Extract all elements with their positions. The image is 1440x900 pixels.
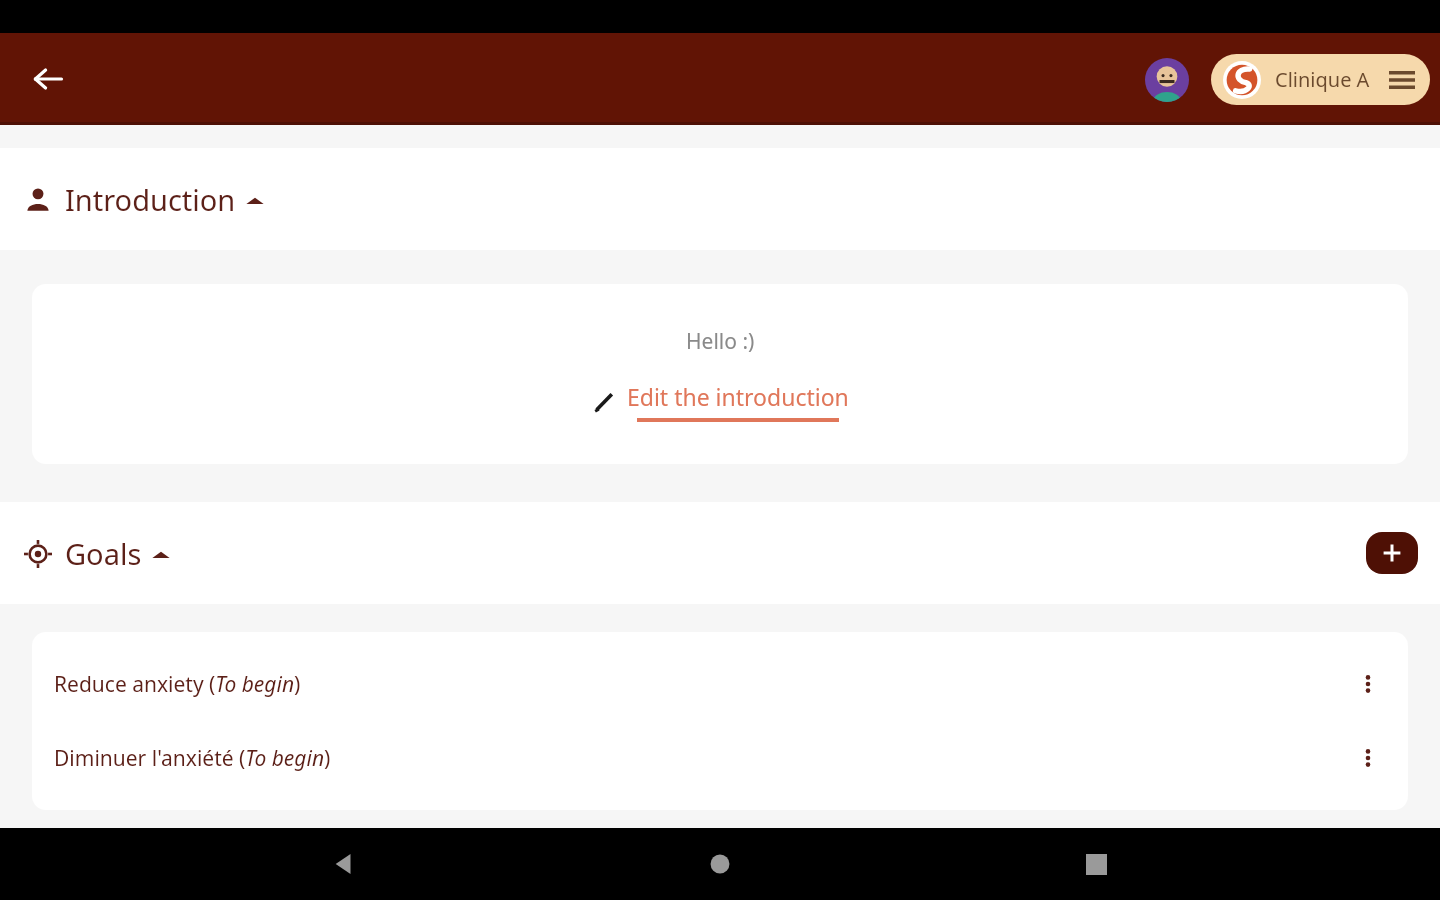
- button[interactable]: Diminuer l'anxiété (To begin): [32, 732, 1408, 784]
- staticText: Introduction: [65, 180, 236, 219]
- button[interactable]: Home: [688, 832, 752, 896]
- button[interactable]: Edit the introduction: [591, 381, 849, 422]
- button[interactable]: Goals: [24, 534, 170, 573]
- staticText: Goals: [65, 534, 142, 573]
- button[interactable]: Menu: [1386, 64, 1418, 96]
- staticText: Diminuer l'anxiété (To begin): [54, 744, 331, 773]
- button[interactable]: Introduction: [0, 148, 1440, 250]
- button[interactable]: Reduce anxiety (To begin): [32, 658, 1408, 710]
- button[interactable]: More options: [1350, 666, 1386, 702]
- button[interactable]: More options: [1350, 740, 1386, 776]
- button[interactable]: Back: [312, 832, 376, 896]
- button[interactable]: Clinique A: [1211, 54, 1430, 105]
- staticText: Edit the introduction: [627, 381, 849, 412]
- staticText: Hello :): [686, 327, 755, 356]
- button[interactable]: Profile: [1145, 58, 1189, 102]
- staticText: Clinique A: [1275, 66, 1370, 93]
- button[interactable]: Back: [20, 51, 76, 107]
- button[interactable]: Add goal: [1366, 532, 1418, 574]
- button[interactable]: Recents: [1064, 832, 1128, 896]
- staticText: Reduce anxiety (To begin): [54, 670, 301, 699]
